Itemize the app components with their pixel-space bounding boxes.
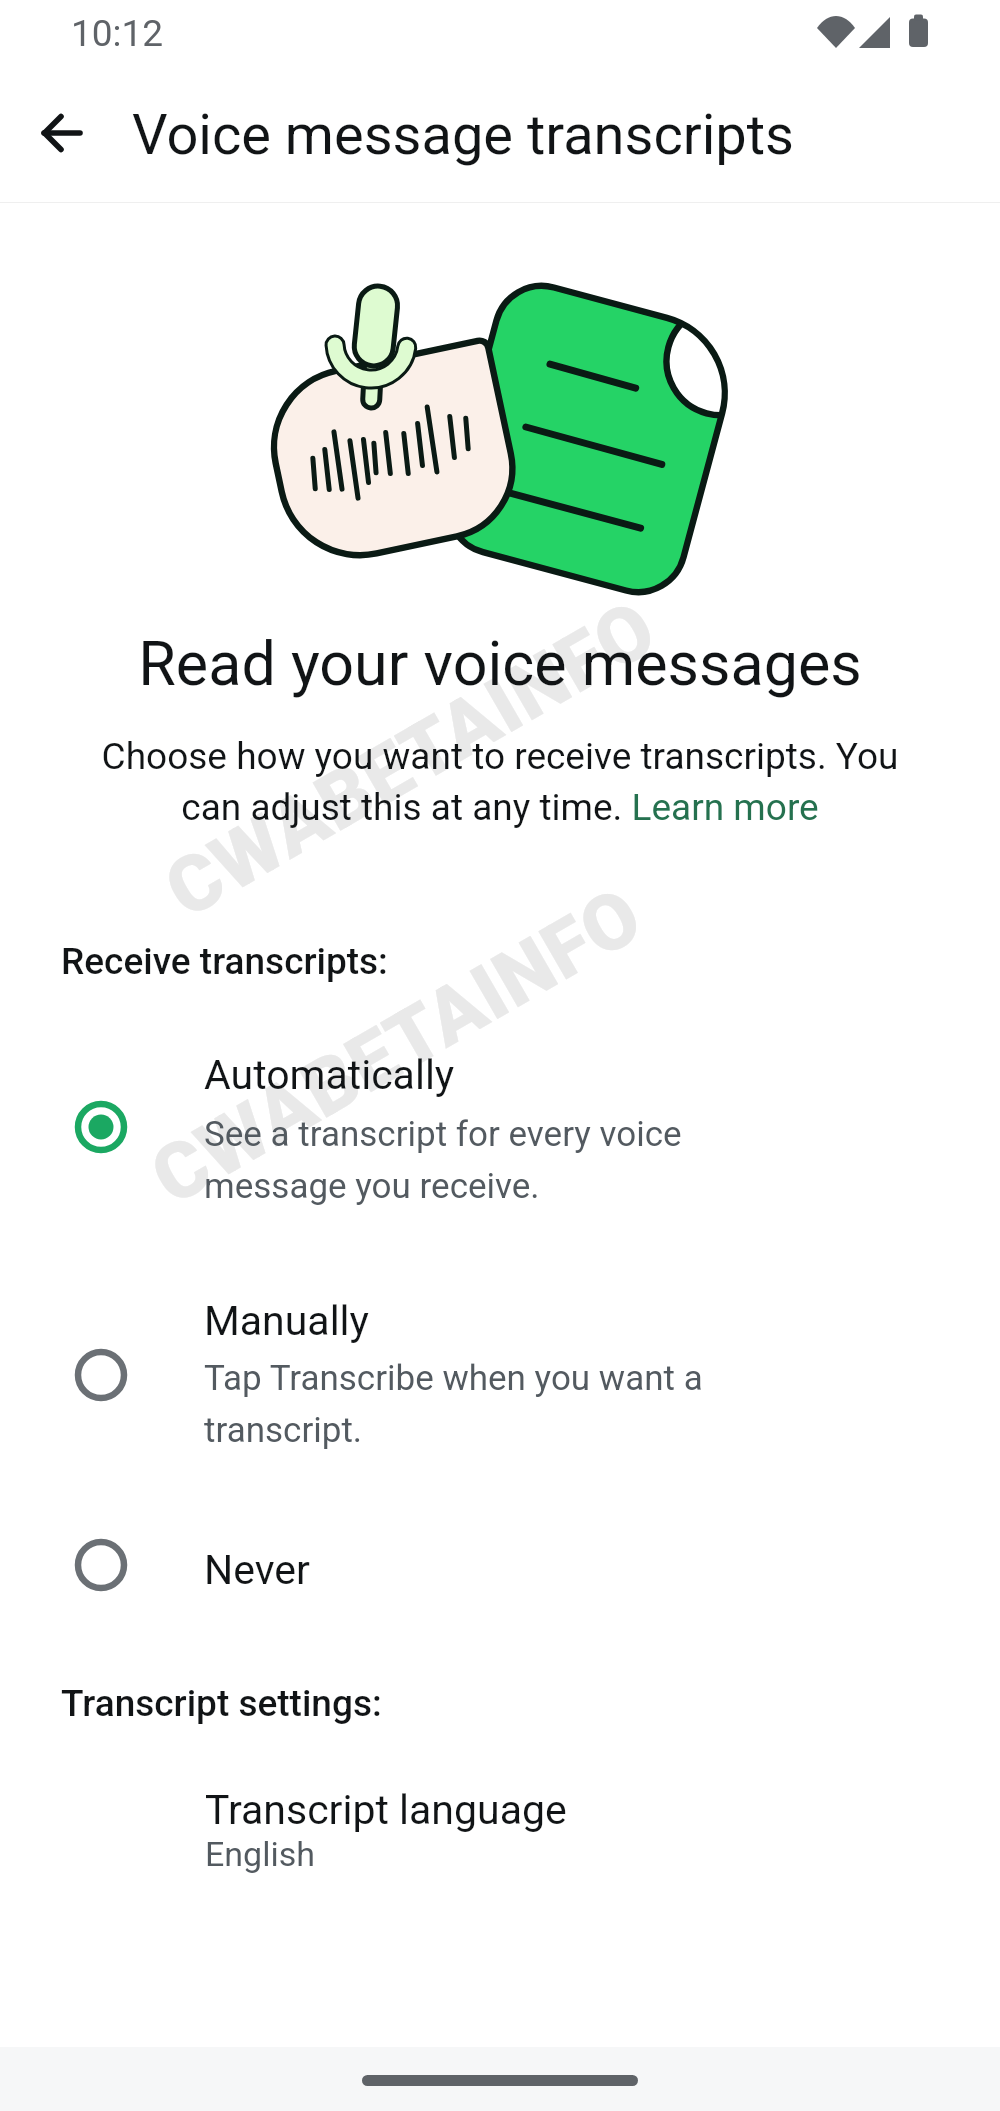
button[interactable]: Manually	[0, 1327, 1000, 1475]
staticText: Transcript language	[205, 1786, 567, 1834]
staticText: Transcript settings:	[61, 1682, 382, 1725]
staticText: Automatically	[204, 1051, 455, 1099]
staticText: CWABETAINFO	[136, 870, 657, 1223]
button[interactable]: Automatically	[0, 1079, 1000, 1231]
button[interactable]: Transcript language	[0, 1782, 1000, 1884]
staticText: Never	[204, 1546, 310, 1594]
button[interactable]: Never	[0, 1517, 1000, 1613]
staticText: Manually	[204, 1297, 369, 1345]
staticText: Read your voice messages	[0, 628, 1000, 699]
staticText: CWABETAINFO	[150, 583, 671, 936]
staticText: Voice message transcripts	[132, 102, 795, 168]
staticText: English	[205, 1834, 316, 1874]
staticText: Receive transcripts:	[61, 940, 388, 983]
staticText: See a transcript for every voice message…	[204, 1114, 682, 1207]
button[interactable]: Back	[20, 91, 104, 175]
staticText: Choose how you want to receive transcrip…	[74, 735, 926, 829]
staticText: 10:12	[71, 12, 164, 55]
staticText: Tap Transcribe when you want a transcrip…	[204, 1358, 703, 1451]
